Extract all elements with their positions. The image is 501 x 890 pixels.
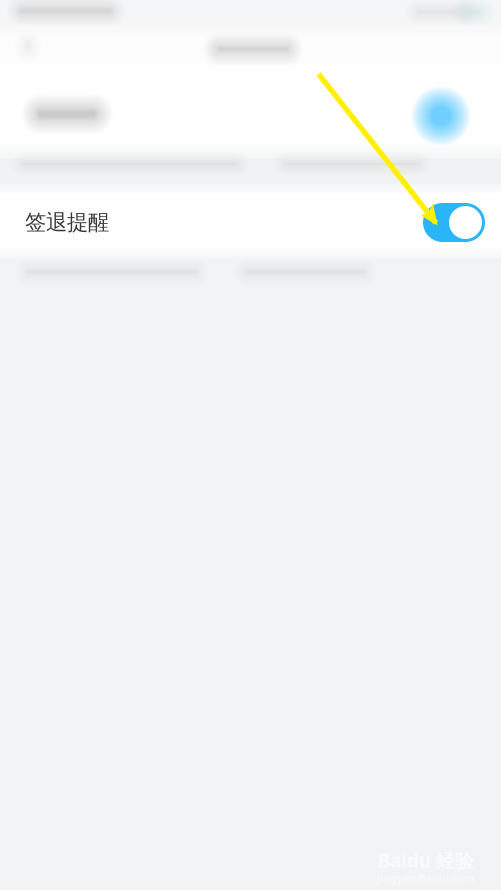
staticText: Baidu 经验 [378, 848, 474, 873]
button[interactable]: 签退提醒 [0, 197, 501, 248]
staticText: 签退提醒 [25, 209, 109, 236]
